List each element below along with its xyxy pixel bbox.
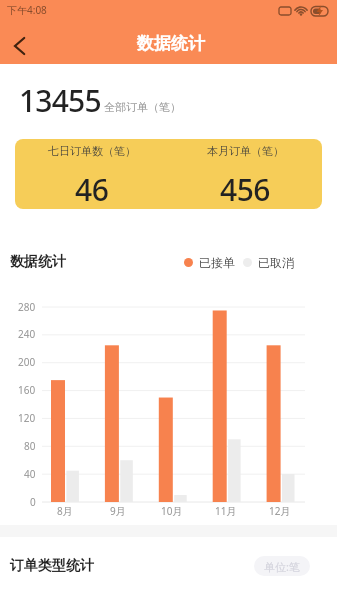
- staticText: 全部订单（笔）: [104, 100, 181, 114]
- staticText: 下午4:08: [7, 3, 47, 17]
- staticText: 本月订单（笔）: [207, 144, 284, 158]
- staticText: 46: [75, 169, 109, 209]
- staticText: 数据统计: [137, 33, 205, 54]
- button[interactable]: 单位:笔: [254, 556, 310, 576]
- staticText: 已接单: [199, 255, 235, 270]
- staticText: 订单类型统计: [10, 557, 94, 575]
- staticText: 456: [220, 169, 270, 209]
- staticText: 单位:笔: [264, 559, 300, 574]
- staticText: 10月: [161, 504, 183, 518]
- staticText: 已取消: [258, 255, 294, 270]
- staticText: 40: [24, 467, 36, 481]
- staticText: 120: [18, 411, 36, 425]
- staticText: 13455: [19, 80, 101, 121]
- staticText: 8月: [57, 504, 73, 518]
- staticText: 200: [18, 355, 36, 369]
- staticText: 12月: [269, 504, 291, 518]
- staticText: 240: [18, 327, 36, 341]
- staticText: 280: [18, 300, 36, 314]
- staticText: 数据统计: [10, 253, 66, 271]
- staticText: 80: [24, 439, 36, 453]
- staticText: 160: [18, 383, 36, 397]
- button[interactable]: [0, 18, 44, 62]
- staticText: 0: [30, 495, 36, 509]
- staticText: 9月: [110, 504, 126, 518]
- button[interactable]: 七日订单数（笔）: [15, 139, 322, 209]
- staticText: 七日订单数（笔）: [48, 144, 136, 158]
- staticText: 11月: [215, 504, 237, 518]
